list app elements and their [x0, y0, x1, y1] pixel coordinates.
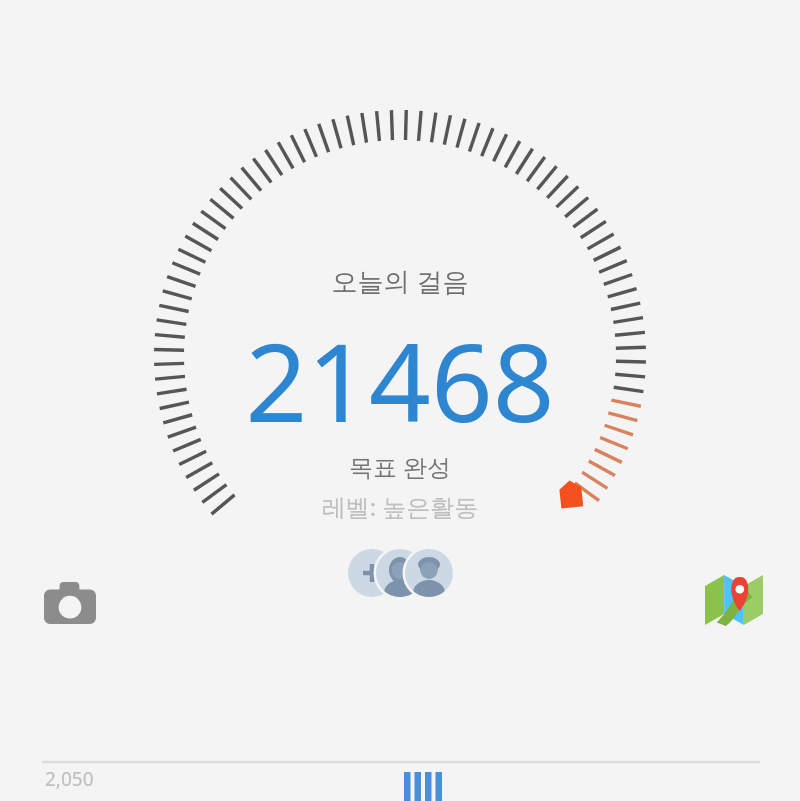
staticText: 오늘의 걸음	[0, 263, 800, 801]
staticText: 레벨: 높은활동	[0, 490, 800, 801]
staticText: 21468	[0, 307, 800, 801]
button[interactable]: Friends	[348, 549, 453, 597]
staticText: 목표 완성	[0, 450, 800, 801]
button[interactable]: Map	[705, 575, 763, 625]
staticText: 2,050	[45, 766, 94, 792]
button[interactable]: Camera	[44, 582, 96, 624]
